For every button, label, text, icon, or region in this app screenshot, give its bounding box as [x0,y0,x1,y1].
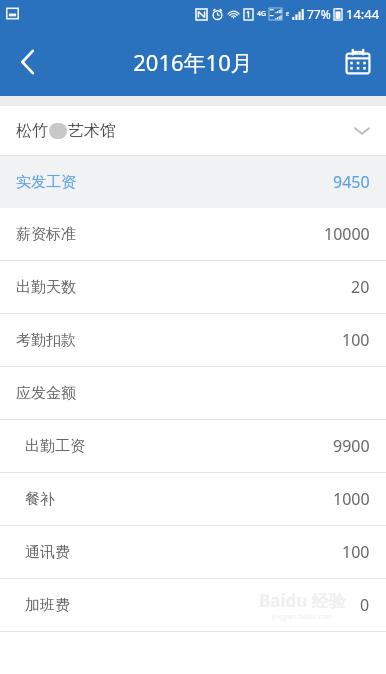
staticText: 4G [257,9,267,19]
button[interactable]: 薪资标准 [0,208,386,260]
staticText: E [286,10,290,18]
staticText: 实发工资 [16,173,76,192]
staticText: 20 [351,276,370,298]
staticText: 9900 [333,435,370,457]
button[interactable]: 实发工资 [0,156,386,208]
staticText: 通讯费 [25,543,70,562]
staticText: Baidu 经验 [259,589,346,612]
staticText: 松竹 [16,121,48,141]
staticText: 应发金额 [16,384,76,403]
button[interactable]: Calendar [330,27,386,96]
staticText: 14:44 [346,5,380,23]
staticText: jingyan.baidu.com [272,612,333,622]
staticText: 餐补 [25,490,55,509]
staticText: 9450 [333,171,370,193]
staticText: 艺术馆 [68,121,116,141]
staticText: 出勤工资 [25,437,85,456]
staticText: 100 [342,541,370,563]
button[interactable]: 应发金额 [0,367,386,419]
staticText: 2016年10月 [133,47,253,77]
button[interactable]: 通讯费 [0,526,386,578]
staticText: 0 [360,594,370,616]
staticText: 加班费 [25,596,70,615]
staticText: 薪资标准 [16,225,76,244]
staticText: 77% [307,6,331,22]
button[interactable]: 考勤扣款 [0,314,386,366]
button[interactable]: 加班费 [0,579,386,631]
staticText: 10000 [324,223,370,245]
staticText: 1000 [333,488,370,510]
staticText: 考勤扣款 [16,331,76,350]
staticText: 100 [342,329,370,351]
staticText: 出勤天数 [16,278,76,297]
button[interactable]: Back [0,27,56,96]
button[interactable]: 出勤天数 [0,261,386,313]
button[interactable]: 出勤工资 [0,420,386,472]
button[interactable]: 松竹 [0,106,386,155]
button[interactable]: 餐补 [0,473,386,525]
